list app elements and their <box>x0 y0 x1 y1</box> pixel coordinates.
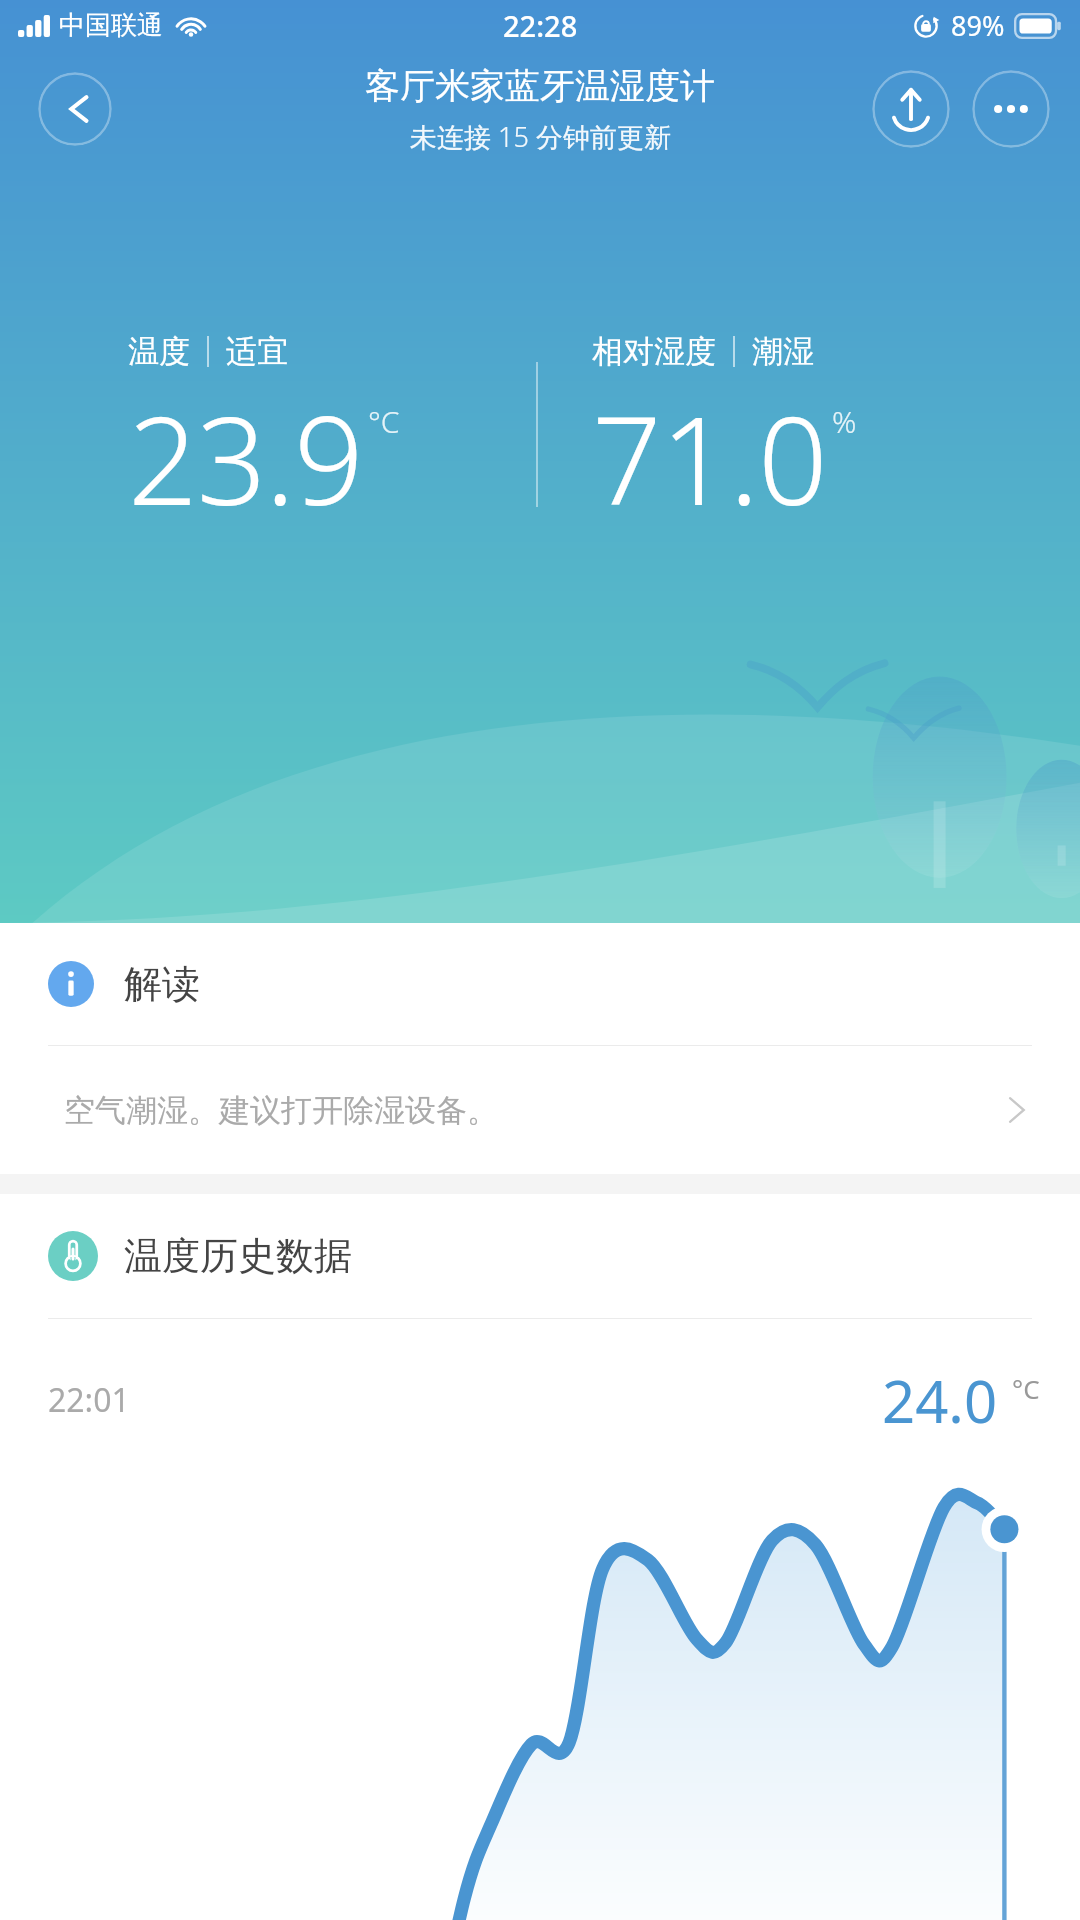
staticText: 22:01 <box>48 1378 130 1422</box>
staticText: 客厅米家蓝牙温湿度计 <box>365 64 715 108</box>
staticText: 空气潮湿。建议打开除湿设备。 <box>64 1091 998 1130</box>
staticText: 温度历史数据 <box>124 1232 352 1280</box>
staticText: 温度 <box>128 332 190 371</box>
staticText: °C <box>368 401 400 442</box>
staticText: 中国联通 <box>59 9 163 42</box>
staticText: 相对湿度 <box>592 332 716 371</box>
staticText: 71.0 <box>592 375 827 541</box>
button[interactable]: Share <box>872 70 950 148</box>
button[interactable]: Back <box>38 72 112 146</box>
staticText: 潮湿 <box>752 332 814 371</box>
button[interactable]: More options <box>972 70 1050 148</box>
staticText: 22:28 <box>503 6 578 45</box>
staticText: 未连接 15 分钟前更新 <box>410 118 671 155</box>
staticText: % <box>832 401 857 442</box>
staticText: °C <box>1012 1371 1040 1406</box>
staticText: 23.9 <box>128 375 363 541</box>
staticText: 89% <box>951 7 1005 44</box>
staticText: 24.0 <box>882 1361 998 1440</box>
button[interactable]: 空气潮湿。建议打开除湿设备。 <box>0 1046 1080 1174</box>
staticText: 解读 <box>124 960 200 1008</box>
staticText: 适宜 <box>226 332 288 371</box>
